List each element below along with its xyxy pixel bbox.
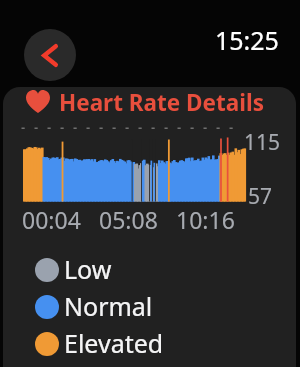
staticText: Elevated — [64, 326, 164, 356]
staticText: 15:25 — [215, 23, 279, 57]
staticText: 115 — [244, 128, 281, 157]
button[interactable]: Back — [24, 29, 76, 81]
button[interactable]: Elevated — [31, 332, 231, 362]
staticText: 05:08 — [99, 204, 158, 235]
staticText: Low — [64, 252, 112, 282]
staticText: Normal — [64, 289, 153, 319]
staticText: Heart Rate Details — [59, 87, 264, 117]
staticText: 57 — [248, 182, 273, 211]
button[interactable]: Normal — [31, 295, 231, 325]
staticText: 10:16 — [176, 204, 235, 235]
button[interactable]: Heart Rate Details — [26, 87, 276, 117]
button[interactable]: Low — [31, 258, 231, 288]
staticText: 00:04 — [22, 204, 81, 235]
